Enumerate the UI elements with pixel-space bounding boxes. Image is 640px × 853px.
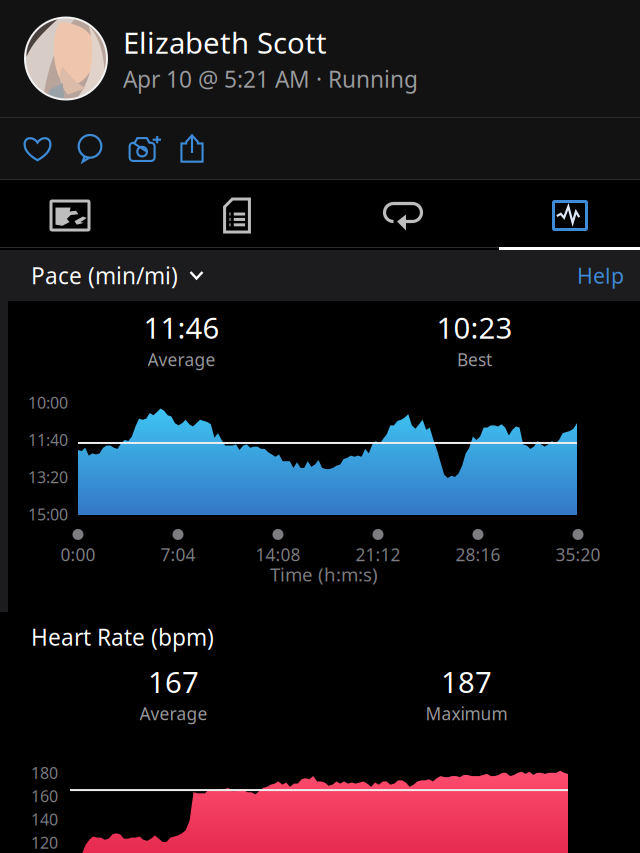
staticText: 11:40 <box>28 429 68 450</box>
staticText: 160 <box>31 785 58 806</box>
staticText: 140 <box>31 809 58 830</box>
staticText: Average <box>147 348 215 371</box>
staticText: 120 <box>31 832 58 853</box>
button[interactable]: Pace (min/mi) <box>0 250 212 301</box>
staticText: 28:16 <box>455 543 500 566</box>
button[interactable]: Add photo <box>116 128 168 168</box>
staticText: 187 <box>441 662 492 701</box>
button[interactable]: Comment <box>64 128 116 168</box>
staticText: 11:46 <box>143 308 219 347</box>
staticText: 21:12 <box>355 543 400 566</box>
button[interactable]: Help <box>577 250 640 301</box>
staticText: Best <box>457 348 492 371</box>
staticText: 167 <box>148 662 199 701</box>
button[interactable]: Analysis <box>500 180 640 247</box>
staticText: 10:00 <box>28 392 68 413</box>
button[interactable]: Share <box>168 128 216 168</box>
staticText: Elizabeth Scott <box>123 23 327 62</box>
staticText: Apr 10 @ 5:21 AM · Running <box>123 64 418 94</box>
staticText: 35:20 <box>555 543 600 566</box>
button[interactable]: Splits <box>140 180 334 247</box>
staticText: 13:20 <box>28 466 68 488</box>
staticText: Pace (min/mi) <box>31 260 178 290</box>
staticText: 7:04 <box>160 543 195 566</box>
staticText: Help <box>577 261 624 290</box>
staticText: 0:00 <box>60 543 95 566</box>
staticText: 10:23 <box>436 308 512 347</box>
button[interactable]: Laps <box>334 180 500 247</box>
staticText: Heart Rate (bpm) <box>31 622 214 652</box>
staticText: 180 <box>31 762 58 783</box>
staticText: Time (h:m:s) <box>270 562 378 587</box>
staticText: Maximum <box>425 702 507 725</box>
staticText: 14:08 <box>255 543 300 566</box>
staticText: Average <box>139 702 207 725</box>
button[interactable]: Map <box>0 180 140 247</box>
staticText: 15:00 <box>28 504 68 525</box>
button[interactable]: Like <box>11 128 64 168</box>
